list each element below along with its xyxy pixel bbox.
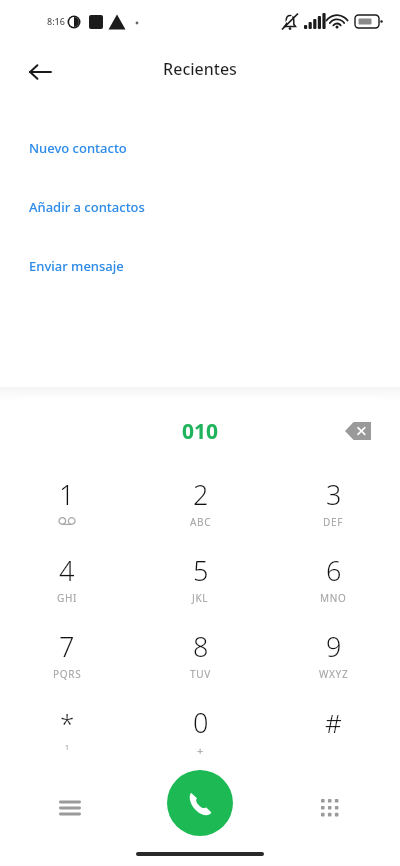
button[interactable]: 2 (134, 465, 267, 541)
staticText: 1 (59, 476, 75, 513)
staticText: # (325, 705, 342, 740)
button[interactable]: Nuevo contacto (0, 118, 400, 177)
staticText: Nuevo contacto (29, 139, 127, 157)
staticText: JKL (192, 591, 209, 605)
staticText: 010 (182, 417, 219, 446)
staticText: 6 (326, 552, 342, 589)
button[interactable]: 5 (134, 541, 267, 617)
staticText: 7 (59, 628, 75, 665)
button[interactable]: Backspace (338, 411, 378, 451)
staticText: 8 (193, 628, 209, 665)
staticText: 8:16 (47, 15, 65, 27)
staticText: PQRS (53, 667, 82, 681)
staticText: 5 (193, 552, 209, 589)
button[interactable]: Añadir a contactos (0, 177, 400, 236)
button[interactable]: 4 (0, 541, 134, 617)
staticText: * (60, 705, 75, 740)
button[interactable]: 6 (267, 541, 400, 617)
staticText: 1 (65, 743, 70, 753)
staticText: Añadir a contactos (29, 198, 145, 216)
staticText: Enviar mensaje (29, 257, 124, 275)
staticText: ABC (190, 515, 212, 529)
button[interactable]: Back (18, 50, 62, 94)
staticText: 3 (326, 476, 342, 513)
staticText: WXYZ (319, 667, 349, 681)
button[interactable]: 3 (267, 465, 400, 541)
staticText: GHI (57, 591, 78, 605)
staticText: 4 (59, 552, 75, 589)
button[interactable]: Call options (46, 784, 94, 832)
button[interactable]: 0 (134, 693, 267, 769)
button[interactable]: Enviar mensaje (0, 236, 400, 295)
button[interactable]: * (0, 693, 134, 769)
button[interactable]: 8 (134, 617, 267, 693)
staticText: TUV (190, 667, 211, 681)
staticText: 0 (193, 704, 209, 741)
button[interactable]: Dialpad (306, 784, 354, 832)
button[interactable]: 7 (0, 617, 134, 693)
staticText: MNO (320, 591, 347, 605)
button[interactable]: # (267, 693, 400, 769)
staticText: + (197, 743, 204, 758)
button[interactable]: 9 (267, 617, 400, 693)
staticText: DEF (323, 515, 344, 529)
button[interactable]: Call (167, 770, 233, 836)
staticText: Recientes (163, 58, 237, 80)
staticText: 9 (326, 628, 342, 665)
staticText: 2 (193, 476, 209, 513)
button[interactable]: 1 (0, 465, 134, 541)
